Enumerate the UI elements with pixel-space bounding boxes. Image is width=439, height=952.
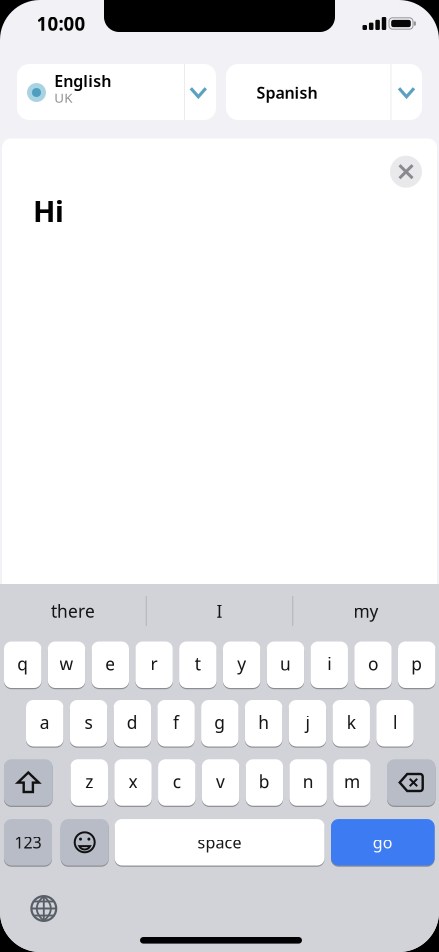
button[interactable]: h — [245, 700, 282, 746]
staticText: my — [353, 599, 378, 622]
staticText: space — [198, 832, 242, 853]
staticText: a — [40, 711, 50, 734]
staticText: English — [54, 70, 111, 91]
button[interactable]: u — [267, 641, 304, 688]
staticText: there — [51, 599, 95, 622]
button[interactable]: g — [201, 700, 239, 746]
button[interactable]: space — [115, 819, 325, 865]
staticText: s — [84, 711, 92, 734]
button[interactable]: go — [331, 819, 435, 865]
staticText: n — [303, 770, 314, 793]
button[interactable] — [61, 819, 109, 865]
staticText: x — [128, 770, 137, 793]
button[interactable]: f — [157, 700, 195, 746]
staticText: p — [411, 652, 422, 675]
staticText: z — [85, 770, 93, 793]
button[interactable]: d — [114, 700, 151, 746]
button[interactable]: j — [289, 700, 326, 746]
staticText: l — [393, 711, 397, 734]
button[interactable]: p — [398, 641, 435, 688]
staticText: d — [127, 711, 138, 734]
button[interactable]: r — [135, 641, 173, 688]
staticText: i — [327, 652, 331, 675]
button[interactable] — [387, 759, 435, 806]
staticText: b — [259, 770, 270, 793]
staticText: w — [59, 652, 73, 675]
staticText: j — [305, 711, 309, 734]
button[interactable]: e — [92, 641, 129, 688]
button[interactable]: t — [179, 641, 217, 688]
button[interactable] — [390, 156, 422, 188]
button[interactable]: w — [48, 641, 85, 688]
button[interactable]: v — [202, 759, 239, 806]
button[interactable]: q — [4, 641, 41, 688]
button[interactable]: n — [289, 759, 327, 806]
staticText: y — [237, 652, 246, 675]
staticText: 123 — [14, 832, 41, 853]
staticText: Spanish — [256, 82, 317, 103]
button[interactable]: c — [158, 759, 196, 806]
staticText: v — [216, 770, 225, 793]
button[interactable]: 123 — [4, 819, 52, 865]
button[interactable]: l — [376, 700, 414, 746]
staticText: q — [17, 652, 28, 675]
button[interactable]: x — [114, 759, 152, 806]
button[interactable]: b — [246, 759, 283, 806]
staticText: e — [105, 652, 115, 675]
button[interactable] — [4, 759, 53, 806]
staticText: 10:00 — [36, 11, 85, 36]
staticText: t — [195, 652, 201, 675]
button[interactable]: my — [296, 591, 436, 631]
staticText: UK — [54, 89, 72, 106]
button[interactable]: I — [149, 591, 289, 631]
staticText: g — [214, 711, 225, 734]
staticText: o — [368, 652, 378, 675]
button[interactable]: o — [354, 641, 392, 688]
staticText: Hi — [33, 191, 64, 230]
button[interactable]: z — [70, 759, 108, 806]
staticText: I — [216, 599, 222, 622]
button[interactable]: Spanish — [226, 64, 422, 120]
button[interactable]: English — [17, 64, 216, 120]
button[interactable]: s — [70, 700, 107, 746]
button[interactable]: y — [223, 641, 260, 688]
staticText: u — [280, 652, 291, 675]
staticText: m — [344, 770, 360, 793]
staticText: h — [258, 711, 269, 734]
button[interactable] — [27, 891, 61, 925]
staticText: go — [373, 832, 393, 853]
staticText: k — [347, 711, 356, 734]
button[interactable]: a — [26, 700, 63, 746]
button[interactable]: there — [3, 591, 143, 631]
staticText: r — [151, 652, 158, 675]
button[interactable]: k — [332, 700, 370, 746]
staticText: c — [173, 770, 181, 793]
staticText: f — [173, 711, 179, 734]
button[interactable]: m — [333, 759, 371, 806]
button[interactable]: i — [310, 641, 348, 688]
